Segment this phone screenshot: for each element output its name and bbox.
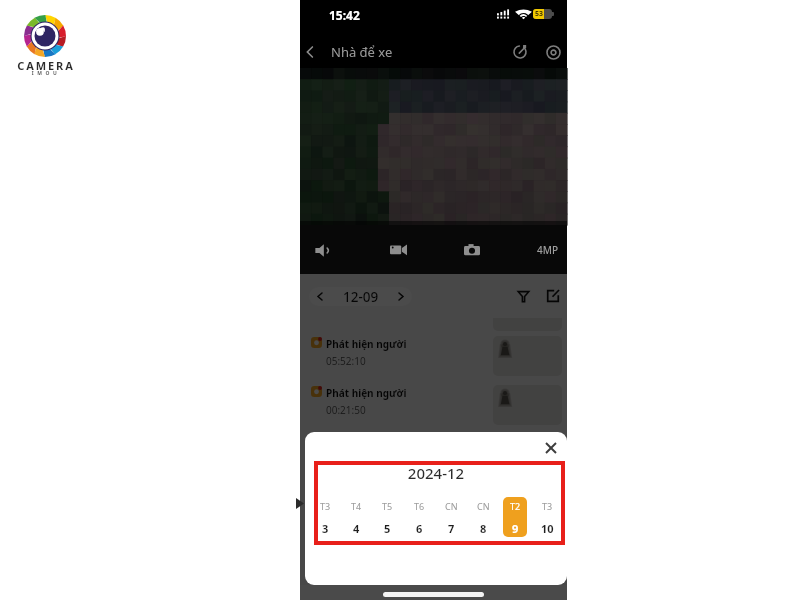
button[interactable]: Settings [538, 37, 568, 67]
button[interactable]: Close [539, 436, 563, 460]
staticText: T2 [510, 500, 521, 512]
button[interactable]: T5 [375, 497, 399, 537]
button[interactable]: CN [439, 497, 463, 537]
staticText: 05:52:10 [326, 354, 366, 368]
staticText: 8 [480, 521, 487, 536]
staticText: 4MP [537, 243, 558, 257]
staticText: 9 [512, 521, 519, 536]
staticText: 10 [541, 521, 554, 536]
staticText: T3 [320, 500, 331, 512]
button[interactable]: Edit [542, 285, 564, 307]
staticText: 00:21:50 [326, 403, 366, 417]
button[interactable]: Snapshot [454, 232, 490, 268]
staticText: 2024-12 [305, 463, 567, 483]
staticText: 12-09 [343, 288, 379, 306]
button[interactable]: Phát hiện người [300, 323, 567, 372]
button[interactable]: T3 [535, 497, 559, 537]
staticText: CAMERA [1, 58, 91, 73]
staticText: T6 [414, 500, 425, 512]
staticText: Phát hiện người [326, 386, 407, 400]
button[interactable]: 12-09 [309, 287, 412, 306]
staticText: 7 [448, 521, 455, 536]
button[interactable]: T2 [503, 497, 527, 537]
staticText: Phát hiện người [326, 337, 407, 351]
staticText: 15:42 [329, 7, 360, 23]
button[interactable]: T6 [407, 497, 431, 537]
staticText: Nhà để xe [331, 43, 393, 61]
button[interactable]: Record video [380, 232, 416, 268]
staticText: 6 [416, 521, 423, 536]
button[interactable]: Sound [305, 232, 341, 268]
staticText: T3 [542, 500, 553, 512]
button[interactable]: Filter [512, 285, 534, 307]
button[interactable]: Phát hiện người [300, 372, 567, 421]
button[interactable]: Share [505, 37, 535, 67]
staticText: T4 [351, 500, 362, 512]
staticText: 5 [384, 521, 391, 536]
button[interactable]: 4MP [529, 232, 565, 268]
button[interactable]: Back [296, 38, 324, 66]
button[interactable]: T4 [344, 497, 368, 537]
staticText: 4 [353, 521, 360, 536]
staticText: T5 [382, 500, 393, 512]
button[interactable]: CN [471, 497, 495, 537]
button[interactable]: T3 [313, 497, 337, 537]
staticText: CN [445, 500, 458, 512]
staticText: IMOU [1, 70, 91, 77]
staticText: 3 [322, 521, 329, 536]
staticText: CN [477, 500, 490, 512]
staticText: 53 [535, 9, 544, 19]
